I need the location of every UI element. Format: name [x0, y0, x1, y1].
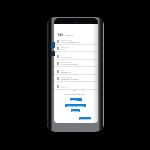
button[interactable]: Name with address — [65, 104, 86, 107]
button[interactable]: Postal code — [54, 45, 98, 52]
staticText: Address change — [70, 99, 82, 101]
button[interactable]: GB — [73, 88, 84, 92]
button[interactable]: Confirm edit — [79, 117, 91, 120]
staticText: Postal code — [61, 46, 70, 48]
staticText: 1234 Company st. 4 — [61, 41, 80, 44]
button[interactable]: Contact Person — [54, 75, 98, 82]
staticText: Address — [65, 34, 74, 37]
button[interactable]: Email — [54, 68, 98, 75]
staticText: +44 20 1234 5678 — [61, 63, 78, 66]
staticText: Opt out — [72, 110, 79, 112]
staticText: GB — [73, 89, 76, 92]
staticText: 5431 — [61, 48, 66, 51]
staticText: Jonathan de Mark — [61, 78, 79, 81]
button[interactable]: Company name — [54, 38, 98, 45]
button[interactable]: Opt out — [71, 109, 80, 112]
staticText: Confirm edit — [80, 118, 91, 120]
staticText: Building Number — [61, 56, 74, 58]
staticText: Contact Person — [61, 76, 72, 78]
staticText: Name with address — [67, 105, 84, 107]
button[interactable]: Building Number — [54, 53, 98, 60]
staticText: Notes — [61, 86, 66, 88]
staticText: Email — [61, 69, 65, 71]
button[interactable]: Address change — [70, 98, 82, 101]
staticText: Edit — [58, 33, 64, 37]
staticText: info@x.co — [61, 71, 71, 74]
staticText: Is this information still right? — [64, 93, 85, 95]
button[interactable]: Phone number — [54, 60, 98, 67]
staticText: Company name — [61, 39, 73, 41]
button[interactable]: Notes — [54, 83, 98, 90]
staticText: Phone number — [61, 61, 72, 63]
